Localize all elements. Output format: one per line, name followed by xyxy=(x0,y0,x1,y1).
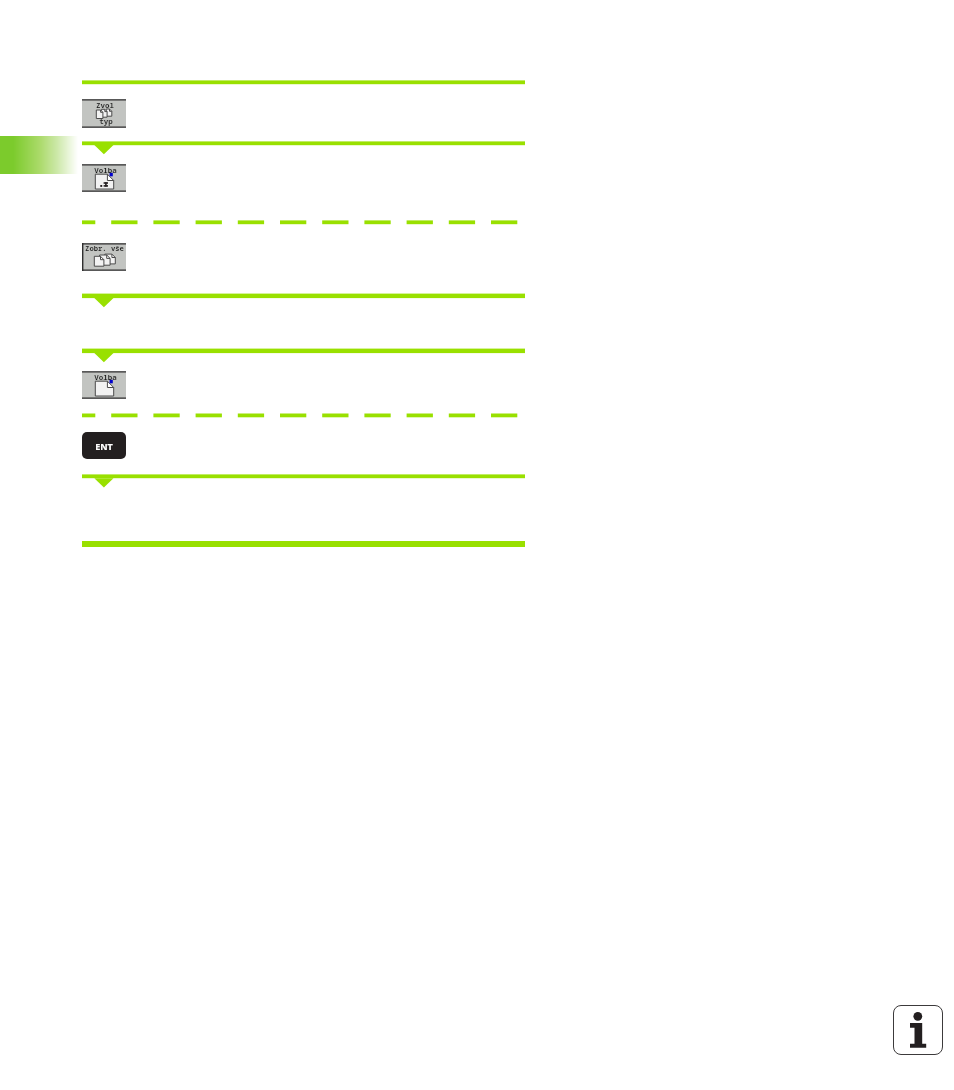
button[interactable]: Zobrazit vše xyxy=(82,243,126,271)
button[interactable]: Volba .I xyxy=(82,164,126,192)
staticText: Zobr. vše xyxy=(85,243,124,253)
button[interactable]: Volba xyxy=(82,371,126,399)
staticText: Volba xyxy=(94,165,117,175)
button[interactable]: ENT xyxy=(82,432,126,459)
staticText: Zvol xyxy=(96,100,114,110)
staticText: typ xyxy=(99,116,113,126)
button[interactable]: Information xyxy=(893,1005,943,1055)
button[interactable]: Zvol typ xyxy=(82,99,126,128)
staticText: Volba xyxy=(94,372,117,382)
staticText: ENT xyxy=(95,440,113,452)
